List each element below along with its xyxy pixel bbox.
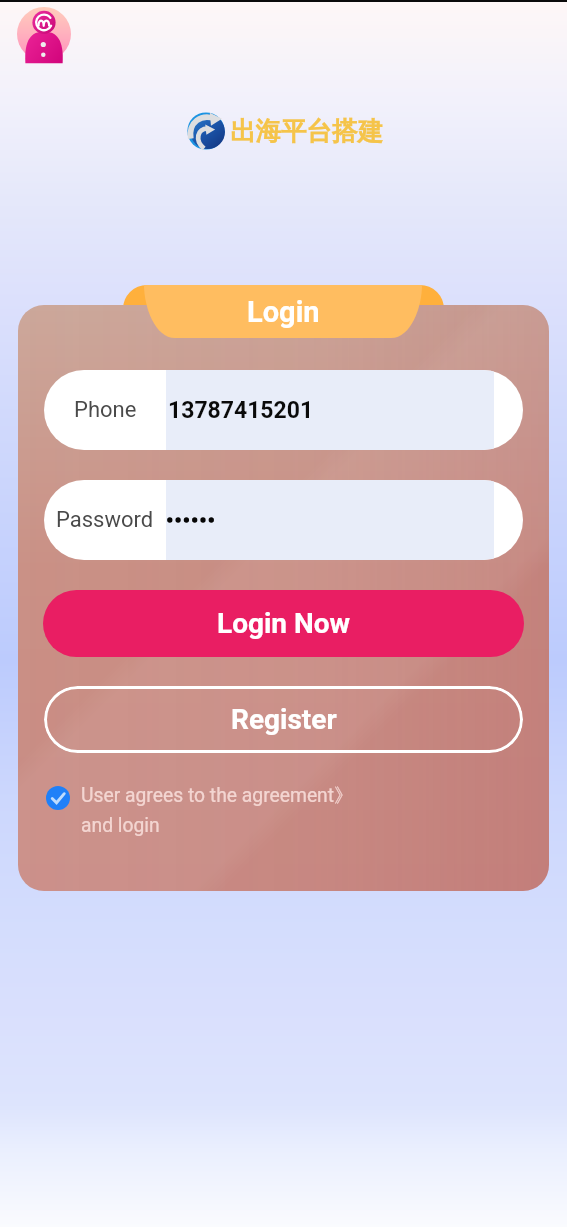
staticText: Register [231, 703, 337, 736]
button[interactable]: Password [44, 480, 523, 560]
staticText: Phone [74, 397, 137, 423]
staticText: Login [247, 295, 320, 329]
staticText: User agrees to the agreement》 and login [81, 783, 354, 837]
staticText: Login Now [217, 607, 351, 640]
button[interactable]: Login Now [43, 590, 524, 657]
button[interactable]: Account [17, 7, 71, 61]
staticText: 出海平台搭建 [230, 115, 383, 147]
staticText: Password [56, 507, 154, 533]
staticText: 13787415201 [168, 397, 314, 424]
button[interactable]: Register [44, 686, 523, 753]
button[interactable]: Phone [44, 370, 523, 450]
button[interactable]: User agrees to the agreement》 and login [46, 783, 354, 837]
